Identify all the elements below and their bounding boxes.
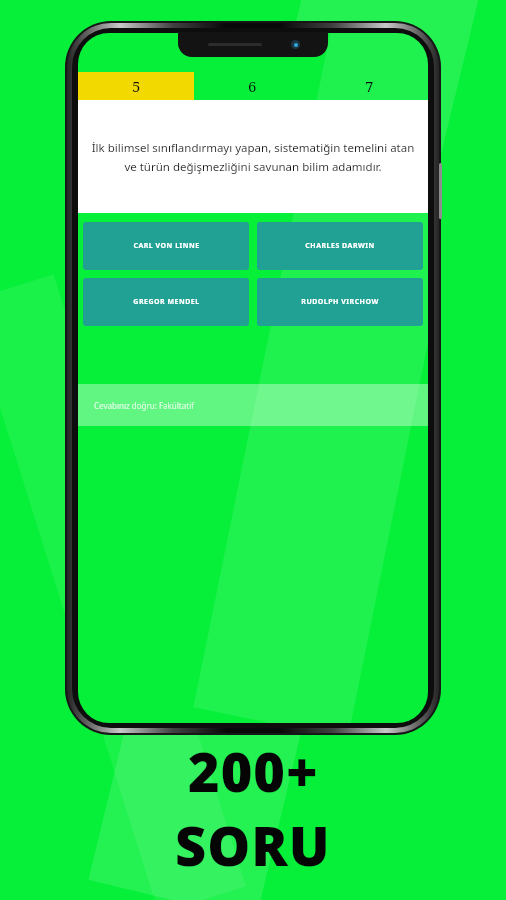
button[interactable]: 6 [194,72,311,100]
staticText: CARL VON LINNE [133,241,200,251]
button[interactable]: 7 [311,72,428,100]
staticText: 6 [248,76,257,96]
staticText: İlk bilimsel sınıflandırmayı yapan, sist… [91,140,415,174]
staticText: GREGOR MENDEL [133,297,200,307]
staticText: 7 [365,76,374,96]
staticText: RUDOLPH VIRCHOW [301,297,379,307]
button[interactable]: CARL VON LINNE [83,222,249,270]
button[interactable]: RUDOLPH VIRCHOW [257,278,423,326]
button[interactable]: GREGOR MENDEL [83,278,249,326]
staticText: 5 [132,76,141,96]
staticText: SORU [175,808,331,882]
button[interactable]: CHARLES DARWIN [257,222,423,270]
staticText: 200+ [188,734,319,808]
button[interactable]: 5 [78,72,194,100]
staticText: CHARLES DARWIN [305,241,375,251]
other: Power button [439,163,442,219]
staticText: Cevabınız doğru: Fakültatif [94,400,194,411]
